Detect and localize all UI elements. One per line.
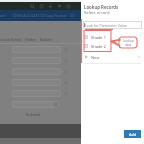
staticText: Shade 1 bbox=[91, 35, 106, 40]
button[interactable]: Related bbox=[40, 37, 52, 41]
button[interactable]: Lookup bbox=[63, 69, 69, 75]
staticText: data bbox=[125, 43, 132, 47]
button[interactable]: Field bbox=[12, 46, 61, 53]
staticText: s Lead Details bbox=[0, 37, 22, 41]
staticText: Hidden bbox=[25, 37, 37, 41]
button[interactable]: Field bbox=[12, 101, 59, 108]
button[interactable]: More bbox=[70, 10, 75, 21]
button[interactable]: Field bbox=[12, 90, 61, 97]
button[interactable]: Shade 2 bbox=[84, 42, 141, 50]
button[interactable]: s Lead Details bbox=[0, 37, 22, 41]
button[interactable]: Field bbox=[12, 57, 61, 64]
button[interactable]: Field bbox=[12, 68, 61, 75]
button[interactable]: New bbox=[84, 53, 141, 61]
button[interactable]: Filter bbox=[55, 2, 64, 10]
button[interactable]: Refresh bbox=[64, 2, 73, 10]
staticText: Submit bbox=[26, 112, 41, 118]
button[interactable]: Add bbox=[46, 2, 55, 10]
staticText: Shade 2 bbox=[91, 44, 106, 49]
button[interactable]: Recalculate bbox=[12, 10, 17, 21]
staticText: Add bbox=[129, 132, 137, 137]
button[interactable]: Field bbox=[12, 79, 61, 86]
button[interactable]: Help bbox=[37, 2, 46, 10]
button[interactable]: Look for Parameter Value bbox=[83, 21, 142, 29]
button[interactable]: Submit bbox=[24, 111, 42, 119]
button[interactable]: Lookup bbox=[63, 47, 69, 53]
staticText: Related bbox=[40, 37, 52, 41]
button[interactable]: Hidden bbox=[25, 37, 37, 41]
button[interactable]: Shade 1 bbox=[84, 33, 141, 41]
button[interactable]: Lookup bbox=[63, 91, 69, 97]
button[interactable]: Add bbox=[124, 130, 141, 138]
staticText: Select record bbox=[84, 10, 110, 16]
other: Filter bbox=[137, 55, 141, 59]
staticText: Copy Product bbox=[45, 13, 67, 18]
staticText: Lookup Records bbox=[84, 4, 119, 10]
staticText: Look for Parameter Value bbox=[85, 23, 127, 28]
staticText: ave bbox=[0, 13, 6, 18]
staticText: Lookup bbox=[123, 39, 134, 43]
button[interactable]: Copy Product bbox=[40, 10, 45, 21]
staticText: New bbox=[91, 55, 100, 60]
button[interactable]: Lookup bbox=[63, 80, 69, 86]
staticText: RECALCULATE bbox=[17, 13, 40, 18]
button[interactable]: Search bbox=[28, 2, 37, 10]
button[interactable]: Lookup bbox=[63, 58, 69, 64]
